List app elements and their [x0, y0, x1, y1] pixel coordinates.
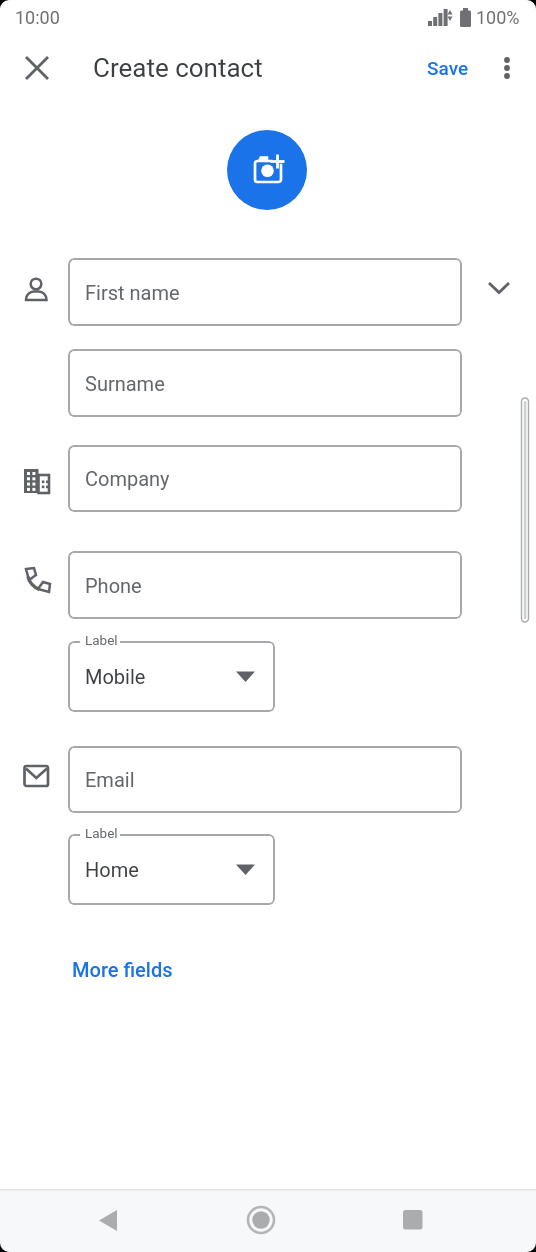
staticText: Label: [85, 825, 125, 843]
staticText: Company: [85, 467, 170, 490]
button[interactable]: [17, 48, 57, 88]
staticText: Surname: [85, 372, 165, 395]
staticText: First name: [85, 281, 180, 304]
button[interactable]: [479, 268, 519, 308]
staticText: Phone: [85, 574, 142, 597]
button[interactable]: Phone: [68, 551, 462, 619]
button[interactable]: Save: [424, 52, 472, 84]
button[interactable]: Company: [68, 445, 462, 512]
button[interactable]: Email: [68, 746, 462, 813]
staticText: 10:00: [15, 7, 60, 28]
button[interactable]: Mobile: [68, 641, 275, 712]
staticText: Home: [85, 858, 139, 881]
button[interactable]: [239, 1198, 283, 1242]
staticText: 100%: [476, 7, 520, 28]
button[interactable]: [489, 50, 525, 86]
staticText: Create contact: [93, 53, 263, 83]
staticText: Label: [85, 632, 125, 650]
button[interactable]: First name: [68, 258, 462, 326]
button[interactable]: Surname: [68, 349, 462, 417]
button[interactable]: Home: [68, 834, 275, 905]
staticText: Mobile: [85, 665, 146, 688]
staticText: Save: [427, 57, 469, 79]
staticText: Email: [85, 768, 135, 791]
button[interactable]: More fields: [72, 955, 202, 983]
button[interactable]: [227, 130, 307, 210]
button[interactable]: [391, 1198, 435, 1242]
button[interactable]: [85, 1198, 129, 1242]
staticText: More fields: [72, 958, 173, 981]
